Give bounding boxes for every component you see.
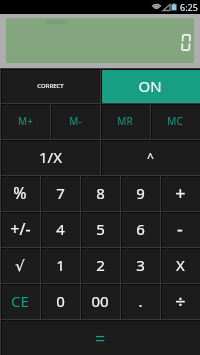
button[interactable]: 8	[80, 175, 120, 211]
button[interactable]: 00	[80, 283, 120, 319]
staticText: CE	[11, 291, 29, 311]
button[interactable]: +/-	[0, 211, 40, 247]
button[interactable]: 9	[120, 175, 160, 211]
staticText: ÷	[175, 289, 186, 314]
staticText: 4	[56, 219, 65, 239]
staticText: +/-	[10, 218, 31, 240]
button[interactable]: 0	[40, 283, 80, 319]
button[interactable]: ON	[100, 68, 200, 103]
button[interactable]: 6	[120, 211, 160, 247]
button[interactable]: √	[0, 247, 40, 283]
staticText: 00	[91, 291, 109, 311]
staticText: ^	[147, 149, 154, 165]
staticText: 6:25	[180, 1, 198, 13]
staticText: CORRECT	[37, 82, 64, 90]
button[interactable]: M+	[0, 103, 50, 139]
button[interactable]: 1/X	[0, 139, 100, 175]
staticText: %	[13, 182, 27, 204]
button[interactable]: 3	[120, 247, 160, 283]
button[interactable]: ÷	[160, 283, 200, 319]
button[interactable]: 4	[40, 211, 80, 247]
staticText: 7	[56, 183, 65, 203]
button[interactable]: M-	[50, 103, 100, 139]
staticText: 0	[56, 291, 65, 311]
staticText: 6	[136, 219, 145, 239]
button[interactable]: X	[160, 247, 200, 283]
button[interactable]: ^	[100, 139, 200, 175]
staticText: =	[95, 326, 106, 351]
button[interactable]: +	[160, 175, 200, 211]
staticText: 1/X	[39, 147, 62, 167]
button[interactable]: 1	[40, 247, 80, 283]
staticText: 3	[136, 255, 145, 275]
staticText: MC	[167, 114, 183, 128]
staticText: M+	[18, 114, 33, 128]
staticText: MR	[117, 114, 133, 128]
staticText: 2	[96, 255, 105, 275]
staticText: -	[177, 217, 183, 242]
button[interactable]: 7	[40, 175, 80, 211]
staticText: 9	[136, 183, 145, 203]
button[interactable]: 2	[80, 247, 120, 283]
staticText: √	[15, 257, 25, 274]
staticText: .	[138, 291, 143, 311]
staticText: MEMORY	[46, 19, 68, 26]
staticText: 5	[96, 219, 105, 239]
staticText: M-	[69, 114, 82, 128]
button[interactable]: %	[0, 175, 40, 211]
button[interactable]: Equals	[0, 319, 200, 355]
staticText: +	[175, 181, 186, 206]
button[interactable]: CE	[0, 283, 40, 319]
staticText: ON	[138, 76, 162, 96]
button[interactable]: -	[160, 211, 200, 247]
button[interactable]: MR	[100, 103, 150, 139]
button[interactable]: 5	[80, 211, 120, 247]
button[interactable]: .	[120, 283, 160, 319]
staticText: 8	[96, 183, 105, 203]
staticText: X	[176, 255, 185, 275]
button[interactable]: MC	[150, 103, 200, 139]
staticText: 1	[56, 255, 65, 275]
button[interactable]: CORRECT	[0, 68, 100, 103]
